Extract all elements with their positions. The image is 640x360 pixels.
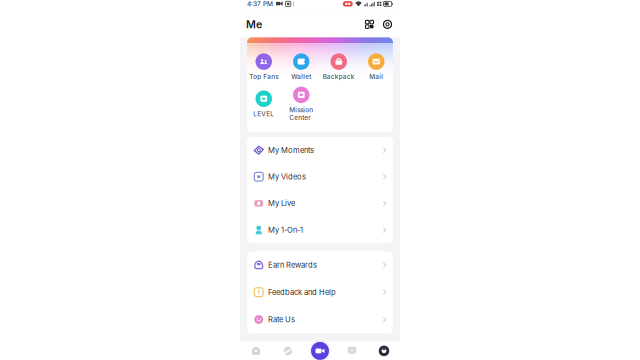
- button[interactable]: LEVEL: [245, 90, 282, 118]
- staticText: Rate Us: [268, 315, 295, 324]
- staticText: Earn Rewards: [268, 260, 317, 269]
- button[interactable]: My Moments: [247, 137, 393, 163]
- button[interactable]: Mission Center: [282, 87, 320, 122]
- staticText: Backpack: [323, 73, 355, 80]
- button[interactable]: Wallet: [282, 53, 320, 80]
- button[interactable]: Home: [240, 340, 272, 360]
- button[interactable]: Top Fans: [245, 53, 282, 80]
- staticText: Wallet: [291, 73, 311, 80]
- button[interactable]: Profile: [368, 340, 400, 360]
- staticText: 4:37 PM: [247, 0, 273, 8]
- button[interactable]: My Live: [247, 190, 393, 217]
- staticText: Mail: [369, 73, 383, 80]
- button[interactable]: Backpack: [320, 53, 357, 80]
- staticText: My Moments: [268, 146, 314, 155]
- button[interactable]: Mail: [357, 53, 395, 80]
- staticText: Mission Center: [289, 106, 313, 122]
- button[interactable]: Rate Us: [247, 306, 393, 333]
- staticText: Me: [246, 18, 262, 31]
- staticText: LEVEL: [253, 110, 274, 118]
- button[interactable]: My Videos: [247, 163, 393, 190]
- staticText: Top Fans: [249, 73, 278, 80]
- button[interactable]: Scan QR code: [363, 18, 376, 31]
- button[interactable]: Settings: [381, 18, 394, 31]
- button[interactable]: My 1-On-1: [247, 217, 393, 243]
- button[interactable]: Earn Rewards: [247, 251, 393, 278]
- button[interactable]: Feedback and Help: [247, 279, 393, 306]
- staticText: My 1-On-1: [268, 225, 303, 235]
- button[interactable]: Explore: [272, 340, 304, 360]
- staticText: Feedback and Help: [268, 288, 336, 297]
- button[interactable]: Go live: [304, 340, 336, 360]
- staticText: My Live: [268, 199, 295, 208]
- button[interactable]: Chat: [336, 340, 368, 360]
- staticText: My Videos: [268, 172, 306, 181]
